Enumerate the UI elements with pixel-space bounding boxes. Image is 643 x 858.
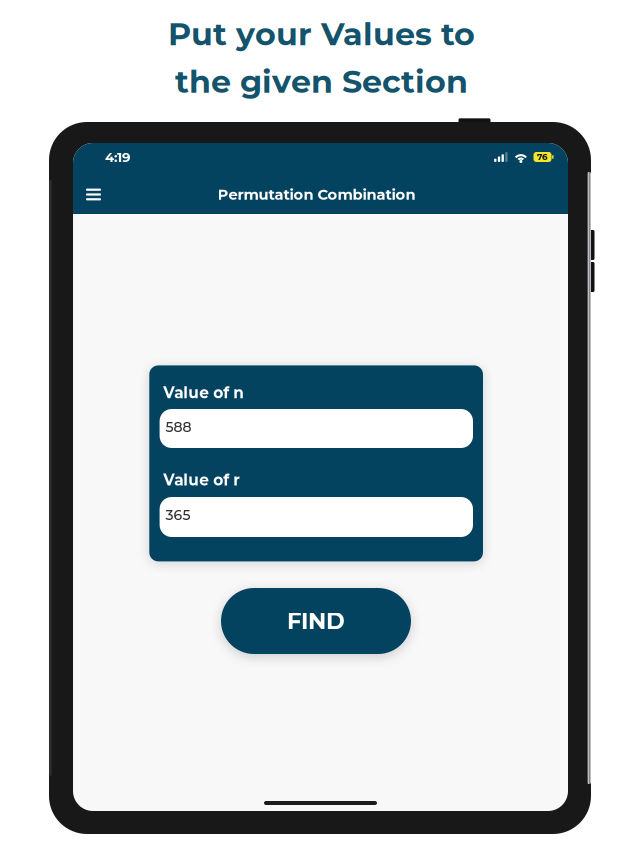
staticText: 76 xyxy=(537,152,548,162)
button[interactable]: FIND xyxy=(221,588,411,654)
staticText: 4:19 xyxy=(105,149,130,165)
staticText: Permutation Combination xyxy=(218,186,416,203)
staticText: Value of r xyxy=(163,471,240,489)
staticText: FIND xyxy=(287,607,345,635)
staticText: the given Section xyxy=(175,62,468,101)
button[interactable]: Menu xyxy=(79,180,107,208)
staticText: Put your Values to xyxy=(168,14,475,53)
staticText: 365 xyxy=(165,506,190,524)
staticText: Value of n xyxy=(163,383,244,402)
staticText: 588 xyxy=(165,418,191,436)
